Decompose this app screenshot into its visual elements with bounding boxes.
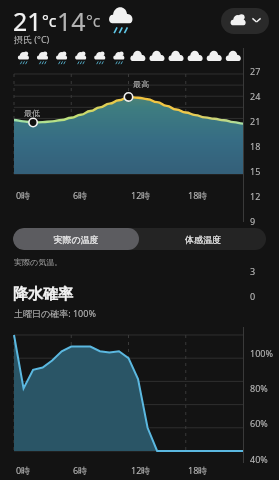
staticText: 0 [250, 290, 256, 302]
staticText: 最高 [133, 79, 149, 89]
staticText: 21 [13, 4, 42, 38]
staticText: 実際の温度 [53, 234, 99, 245]
staticText: 0時 [16, 189, 31, 201]
staticText: 6時 [73, 189, 88, 201]
staticText: 60% [250, 417, 268, 429]
staticText: 18時 [188, 189, 208, 201]
staticText: 27 [250, 65, 261, 77]
staticText: 100% [250, 347, 273, 359]
staticText: 15 [250, 165, 261, 177]
button[interactable]: Weather conditions selector [221, 8, 269, 34]
staticText: 体感温度 [185, 234, 221, 245]
button[interactable]: 実際の温度 [13, 228, 139, 250]
staticText: 12時 [131, 189, 151, 201]
staticText: 24 [250, 90, 261, 102]
button[interactable]: 体感温度 [139, 228, 266, 250]
staticText: 14 [57, 4, 86, 38]
staticText: 18 [250, 140, 261, 152]
staticText: 21 [250, 115, 261, 127]
staticText: 6 [250, 240, 256, 252]
staticText: 9 [250, 215, 256, 227]
staticText: 土曜日の確率: 100% [14, 307, 96, 319]
staticText: 80% [250, 382, 268, 394]
staticText: 6時 [73, 464, 88, 476]
staticText: °c [86, 10, 101, 32]
staticText: 3 [250, 265, 256, 277]
staticText: 実際の気温。 [14, 257, 63, 267]
staticText: 12時 [131, 464, 151, 476]
staticText: °c [42, 10, 57, 32]
staticText: 18時 [188, 464, 208, 476]
staticText: 降水確率 [13, 285, 73, 304]
staticText: 0時 [16, 464, 31, 476]
staticText: 12 [250, 190, 261, 202]
staticText: 最低 [24, 108, 40, 118]
staticText: 40% [250, 453, 268, 465]
staticText: 摂氏 (°C) [14, 33, 50, 45]
